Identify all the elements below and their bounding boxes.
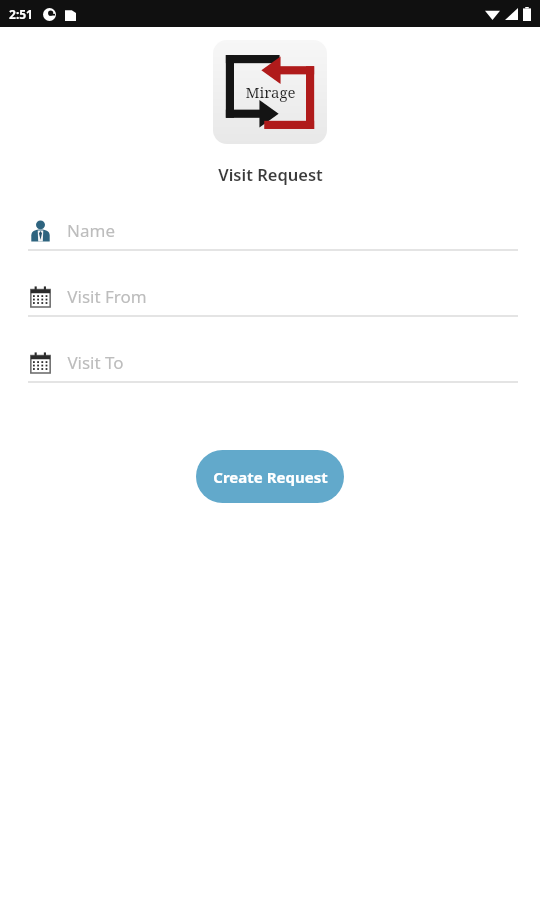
staticText: 2:51 (9, 6, 33, 22)
button[interactable]: Visit To (28, 350, 518, 383)
button[interactable]: Visit From (28, 284, 518, 317)
staticText: Name (67, 219, 115, 242)
staticText: Create Request (213, 467, 328, 487)
staticText: Visit From (67, 285, 147, 308)
button[interactable]: Name (28, 218, 518, 251)
button[interactable]: Create Request (196, 450, 344, 503)
staticText: Visit To (67, 351, 124, 374)
staticText: Visit Request (218, 163, 323, 185)
staticText: Mirage (245, 82, 296, 102)
